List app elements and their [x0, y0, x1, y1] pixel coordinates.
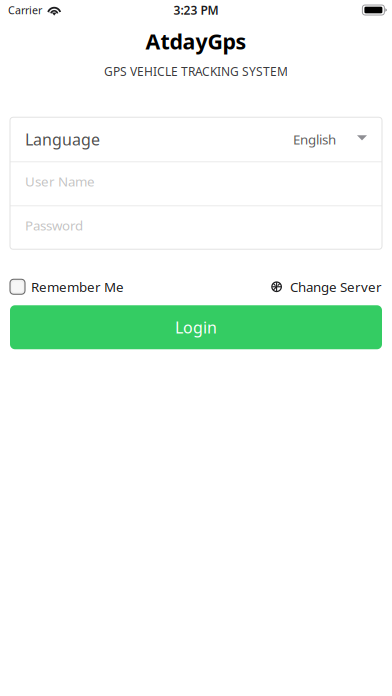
button[interactable]: Change Server: [271, 278, 382, 296]
button[interactable]: Password: [10, 206, 382, 249]
button[interactable]: Remember Me: [10, 278, 124, 296]
staticText: User Name: [25, 172, 95, 190]
staticText: 3:23 PM: [173, 2, 218, 18]
button[interactable]: Login: [10, 305, 382, 349]
staticText: Change Server: [290, 278, 382, 296]
staticText: Carrier: [8, 3, 42, 17]
staticText: AtdayGps: [145, 27, 246, 55]
staticText: Remember Me: [31, 278, 124, 296]
staticText: Password: [25, 216, 83, 234]
staticText: Language: [25, 129, 100, 150]
staticText: English: [293, 130, 336, 148]
button[interactable]: User Name: [10, 162, 382, 205]
staticText: Login: [175, 317, 217, 338]
staticText: GPS VEHICLE TRACKING SYSTEM: [104, 63, 288, 79]
button[interactable]: Language: [10, 117, 382, 161]
